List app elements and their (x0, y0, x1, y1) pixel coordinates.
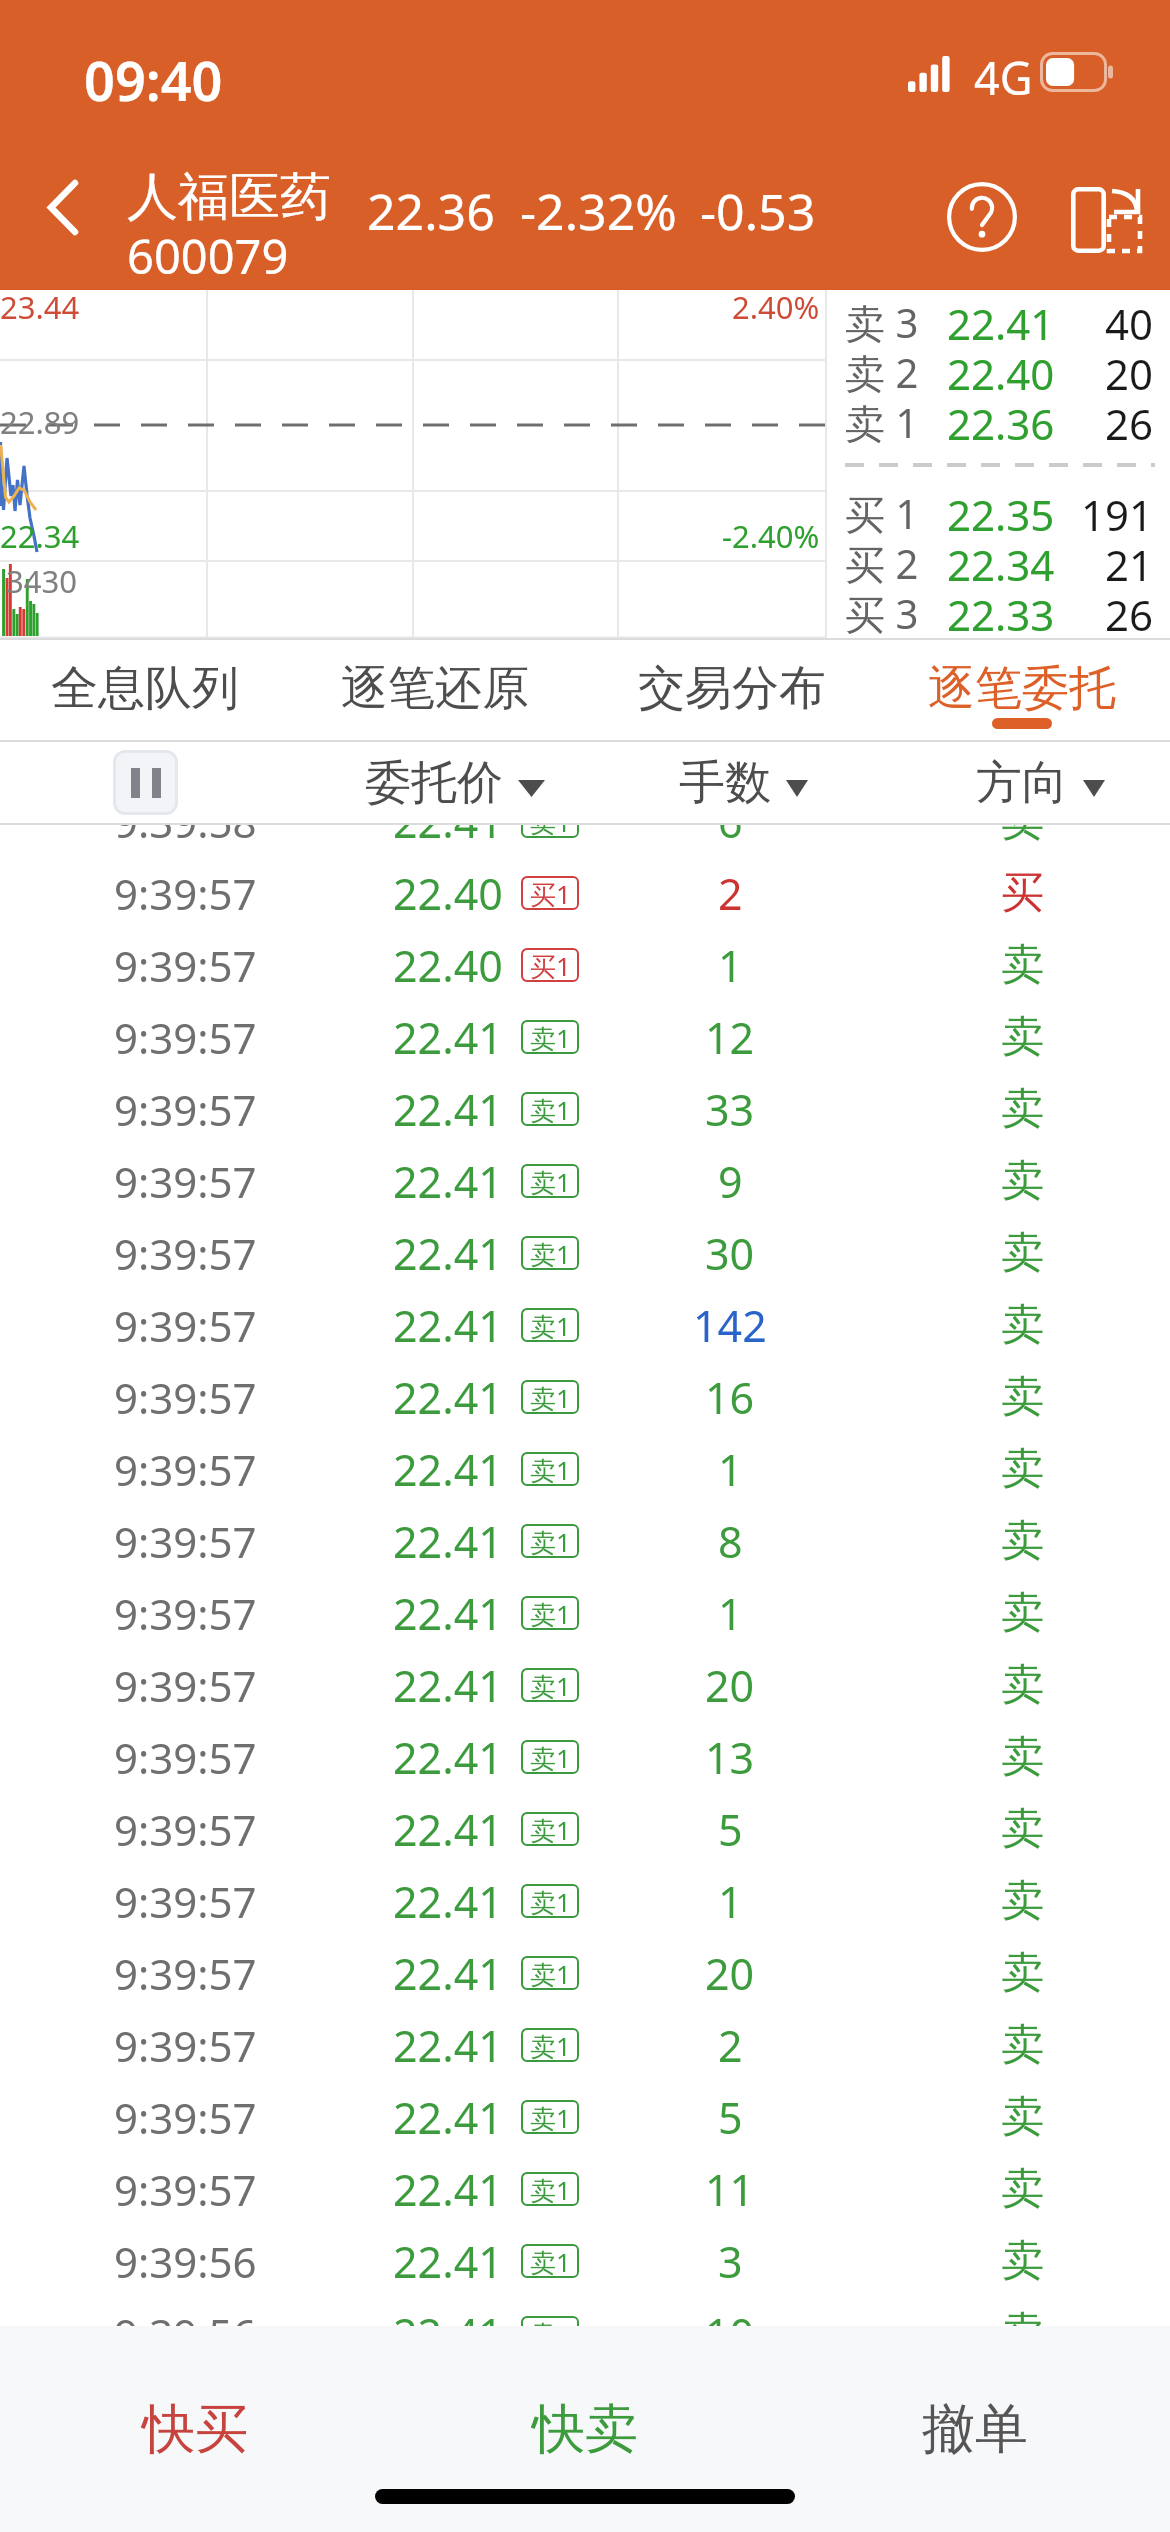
button[interactable]: Multi window (1036, 149, 1170, 290)
staticText: 卖 (1001, 2018, 1044, 2072)
staticText: 卖1 (530, 1164, 571, 1198)
staticText: 卖 (1001, 1082, 1044, 1136)
staticText: 9:39:57 (114, 1225, 257, 1282)
button[interactable]: 9:39:58 (0, 825, 1170, 857)
button[interactable]: 委托价 (365, 742, 545, 823)
button[interactable]: 卖 2 (827, 345, 1170, 395)
staticText: 22.33 (947, 586, 1055, 636)
staticText: 卖 (1001, 1010, 1044, 1064)
staticText: 9:39:58 (114, 825, 257, 850)
staticText: 9:39:57 (114, 865, 257, 922)
staticText: 26 (1105, 586, 1154, 636)
button[interactable]: 9:39:57 (0, 1433, 1170, 1505)
button[interactable]: 买 3 (827, 586, 1170, 636)
staticText: 手数 (679, 754, 771, 812)
button[interactable]: 方向 (976, 742, 1105, 823)
staticText: 22.36 (947, 395, 1055, 445)
button[interactable]: 9:39:57 (0, 857, 1170, 929)
staticText: 142 (693, 1296, 767, 1355)
button[interactable]: 9:39:57 (0, 1145, 1170, 1217)
staticText: 卖 (1001, 1154, 1044, 1208)
button[interactable]: 卖 3 (827, 295, 1170, 345)
staticText: 卖 (1001, 1226, 1044, 1280)
button[interactable]: 9:39:57 (0, 1361, 1170, 1433)
staticText: 9:39:57 (114, 937, 257, 994)
staticText: 买1 (530, 948, 571, 982)
staticText: 1 (718, 1584, 743, 1643)
button[interactable]: 9:39:57 (0, 1937, 1170, 2009)
button[interactable]: 9:39:57 (0, 1073, 1170, 1145)
staticText: 9:39:57 (114, 1153, 257, 1210)
button[interactable]: 9:39:57 (0, 2153, 1170, 2225)
staticText: 16 (705, 1368, 755, 1427)
staticText: 卖1 (530, 1452, 571, 1486)
button[interactable]: 9:39:57 (0, 929, 1170, 1001)
staticText: 9:39:57 (114, 1801, 257, 1858)
staticText: 卖 (1001, 2234, 1044, 2288)
staticText: 卖1 (530, 2244, 571, 2278)
staticText: 买 3 (845, 586, 919, 636)
staticText: 26 (1105, 395, 1154, 445)
staticText: 卖1 (530, 2028, 571, 2062)
button[interactable]: 逐笔还原 (327, 640, 543, 740)
button[interactable]: 买 1 (827, 486, 1170, 536)
staticText: 2 (718, 2016, 743, 2075)
button[interactable]: 9:39:57 (0, 1649, 1170, 1721)
button[interactable]: 逐笔委托 (914, 640, 1130, 740)
button[interactable]: 快买 (0, 2326, 390, 2532)
button[interactable]: 卖 1 (827, 395, 1170, 445)
button[interactable]: 全息队列 (37, 640, 253, 740)
button[interactable]: 买 2 (827, 536, 1170, 586)
button[interactable]: 9:39:57 (0, 1577, 1170, 1649)
button[interactable]: 9:39:57 (0, 1793, 1170, 1865)
staticText: 卖1 (530, 1524, 571, 1558)
staticText: 2.40% (732, 286, 820, 328)
staticText: 22.36 (367, 177, 495, 245)
staticText: 22.41 (393, 1296, 503, 1355)
button[interactable]: 9:39:56 (0, 2225, 1170, 2297)
staticText: 13 (705, 1728, 755, 1787)
staticText: 22.40 (393, 936, 503, 995)
button[interactable]: Back (6, 144, 120, 270)
button[interactable]: 手数 (679, 742, 808, 823)
staticText: 卖 (1001, 1730, 1044, 1784)
staticText: 22.41 (393, 2232, 503, 2291)
button[interactable]: 9:39:57 (0, 1721, 1170, 1793)
staticText: 9:39:57 (114, 1513, 257, 1570)
button[interactable]: 9:39:57 (0, 1865, 1170, 1937)
button[interactable]: 9:39:57 (0, 1001, 1170, 1073)
staticText: 卖1 (530, 825, 571, 838)
staticText: 22.41 (393, 1368, 503, 1427)
staticText: 5 (718, 2088, 743, 2147)
staticText: -2.40% (722, 515, 820, 557)
staticText: 卖 (1001, 2090, 1044, 2144)
staticText: 22.41 (393, 2016, 503, 2075)
button[interactable]: Pause (113, 750, 178, 815)
staticText: 9:39:57 (114, 1729, 257, 1786)
button[interactable]: 9:39:57 (0, 1217, 1170, 1289)
button[interactable]: 9:39:57 (0, 2009, 1170, 2081)
staticText: 1 (718, 1440, 743, 1499)
staticText: 22.41 (393, 1152, 503, 1211)
button[interactable]: 9:39:57 (0, 1505, 1170, 1577)
staticText: 快买 (142, 2396, 248, 2463)
staticText: 卖1 (530, 2172, 571, 2206)
button[interactable]: 撤单 (780, 2326, 1170, 2532)
button[interactable]: 交易分布 (624, 640, 840, 740)
button[interactable]: 9:39:56 (0, 2297, 1170, 2326)
staticText: 卖1 (530, 1668, 571, 1702)
button[interactable]: 快卖 (390, 2326, 780, 2532)
button[interactable]: Help (911, 146, 1052, 287)
staticText: 买1 (530, 876, 571, 910)
button[interactable]: 9:39:57 (0, 1289, 1170, 1361)
button[interactable]: 9:39:57 (0, 2081, 1170, 2153)
staticText: 22.41 (393, 1080, 503, 1139)
staticText: 3 (718, 2232, 743, 2291)
staticText: 快卖 (532, 2396, 638, 2463)
staticText: 4G (974, 47, 1033, 108)
staticText: 9:39:56 (114, 2233, 257, 2290)
staticText: 卖 (1001, 1946, 1044, 2000)
staticText: 卖 2 (845, 345, 919, 395)
staticText: 9:39:57 (114, 1081, 257, 1138)
staticText: 卖1 (530, 1380, 571, 1414)
